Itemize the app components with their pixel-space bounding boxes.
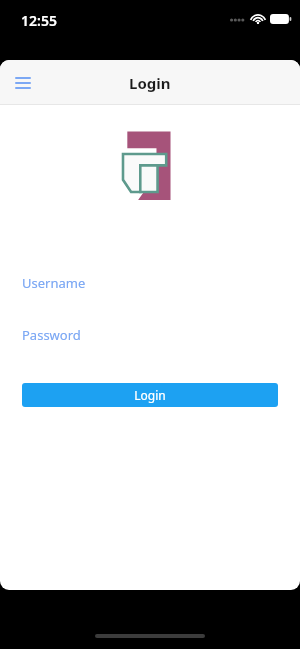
staticText: Username: [22, 274, 86, 292]
staticText: 12:55: [21, 11, 57, 30]
button[interactable]: Login: [22, 383, 278, 407]
staticText: Login: [134, 387, 166, 403]
button[interactable]: Username: [0, 265, 300, 301]
button[interactable]: Password: [0, 317, 300, 353]
staticText: Password: [22, 326, 81, 344]
staticText: Login: [129, 73, 171, 93]
button[interactable]: Open navigation menu: [8, 68, 38, 98]
